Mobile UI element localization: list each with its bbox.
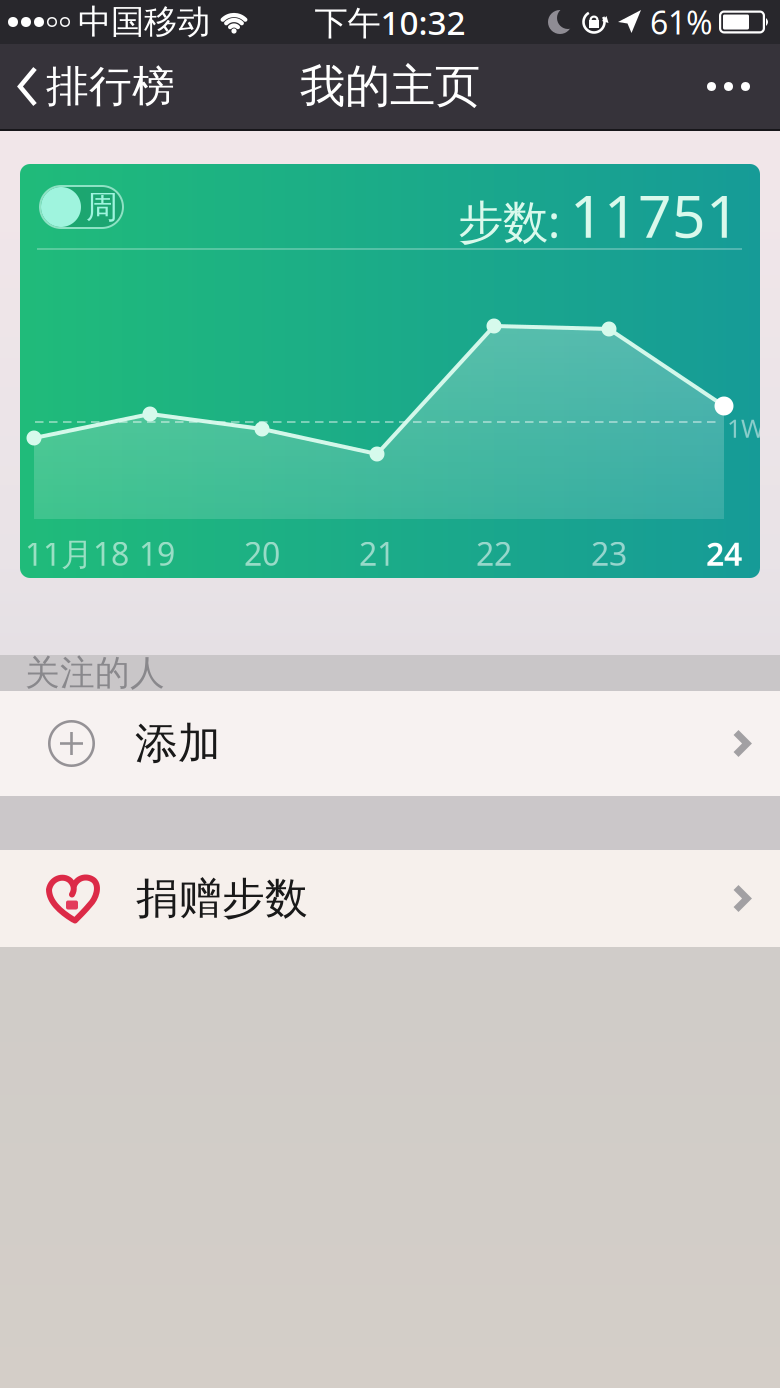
staticText: 步数: <box>458 191 560 251</box>
staticText: 添加 <box>135 717 221 770</box>
staticText: 23 <box>591 532 627 574</box>
button[interactable]: 捐赠步数 <box>0 850 780 947</box>
staticText: 11751 <box>570 176 740 254</box>
staticText: 19 <box>139 532 175 574</box>
staticText: 中国移动 <box>78 1 210 42</box>
button[interactable]: 排行榜 <box>0 60 175 113</box>
staticText: 1W <box>727 411 765 445</box>
staticText: 24 <box>706 532 742 574</box>
staticText: 61% <box>650 1 713 43</box>
button[interactable]: 周/月切换 <box>39 185 124 229</box>
button[interactable]: 添加 <box>0 691 780 796</box>
staticText: 我的主页 <box>300 59 480 114</box>
staticText: 排行榜 <box>46 60 175 113</box>
staticText: 20 <box>244 532 280 574</box>
staticText: 下午10:32 <box>314 0 465 44</box>
staticText: 21 <box>359 532 395 574</box>
staticText: 关注的人 <box>25 652 165 694</box>
staticText: 周 <box>86 187 118 227</box>
staticText: 22 <box>476 532 512 574</box>
button[interactable]: 更多 <box>707 82 780 91</box>
staticText: 捐赠步数 <box>136 872 308 925</box>
staticText: 11月18 <box>25 532 129 574</box>
